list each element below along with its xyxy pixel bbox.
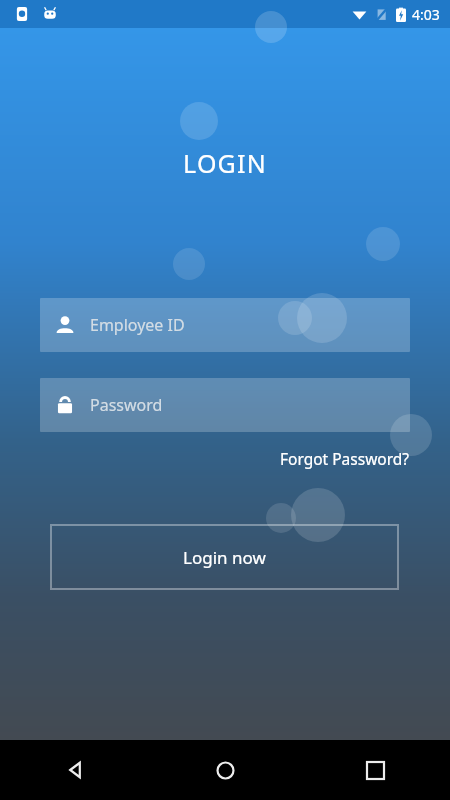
staticText: Password bbox=[90, 394, 163, 416]
staticText: LOGIN bbox=[0, 146, 450, 180]
button[interactable]: Home bbox=[150, 740, 300, 800]
staticText: Employee ID bbox=[90, 314, 185, 336]
staticText: Forgot Password? bbox=[280, 448, 410, 469]
staticText: Login now bbox=[183, 546, 266, 569]
button[interactable]: Password bbox=[40, 378, 410, 432]
button[interactable]: Login now bbox=[51, 525, 398, 589]
button[interactable]: Back bbox=[0, 740, 150, 800]
button[interactable]: Employee ID bbox=[40, 298, 410, 352]
button[interactable]: Forgot Password? bbox=[278, 444, 412, 473]
staticText: 4:03 bbox=[412, 5, 440, 24]
button[interactable]: Recent apps bbox=[300, 740, 450, 800]
